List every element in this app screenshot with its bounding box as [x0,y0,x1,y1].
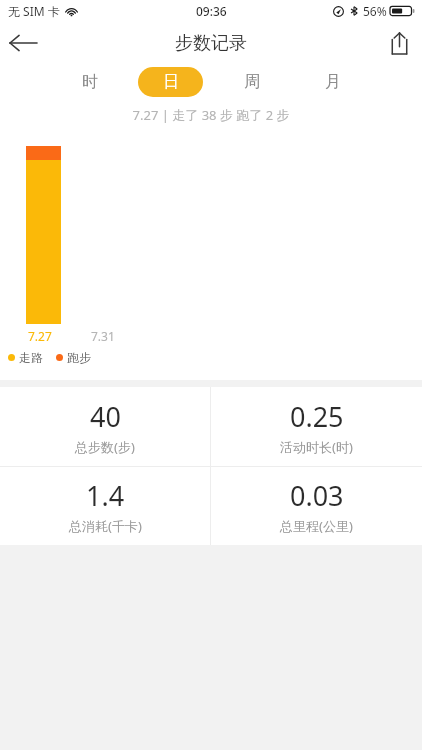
staticText: 7.27 | 走了 38 步 跑了 2 步 [0,106,422,124]
staticText: 活动时长(时) [280,438,353,456]
button[interactable]: Share [376,22,422,64]
button[interactable]: 40 [0,387,210,466]
staticText: 日 [163,72,179,92]
button[interactable]: 时 [57,67,122,97]
button[interactable]: 月 [300,67,365,97]
staticText: 0.25 [290,398,344,435]
staticText: 56% [363,3,387,19]
button[interactable]: 周 [219,67,284,97]
button[interactable]: 0.03 [211,467,422,545]
staticText: 0.03 [290,477,344,514]
staticText: 7.27 [28,328,52,344]
staticText: 09:36 [196,3,227,19]
staticText: 总消耗(千卡) [69,517,142,535]
button[interactable]: 日 [138,67,203,97]
staticText: 无 SIM 卡 [8,3,60,19]
staticText: 7.31 [91,328,115,344]
button[interactable]: 0.25 [211,387,422,466]
staticText: 1.4 [86,477,125,514]
staticText: 周 [244,72,260,92]
staticText: 40 [90,398,121,435]
button[interactable]: Back [0,22,46,64]
staticText: 走路 [19,350,43,365]
staticText: 步数记录 [175,32,247,55]
staticText: 时 [82,72,98,92]
button[interactable]: 1.4 [0,467,210,545]
staticText: 跑步 [67,350,91,365]
staticText: 总步数(步) [75,438,135,456]
staticText: 月 [325,72,341,92]
staticText: 总里程(公里) [280,517,353,535]
